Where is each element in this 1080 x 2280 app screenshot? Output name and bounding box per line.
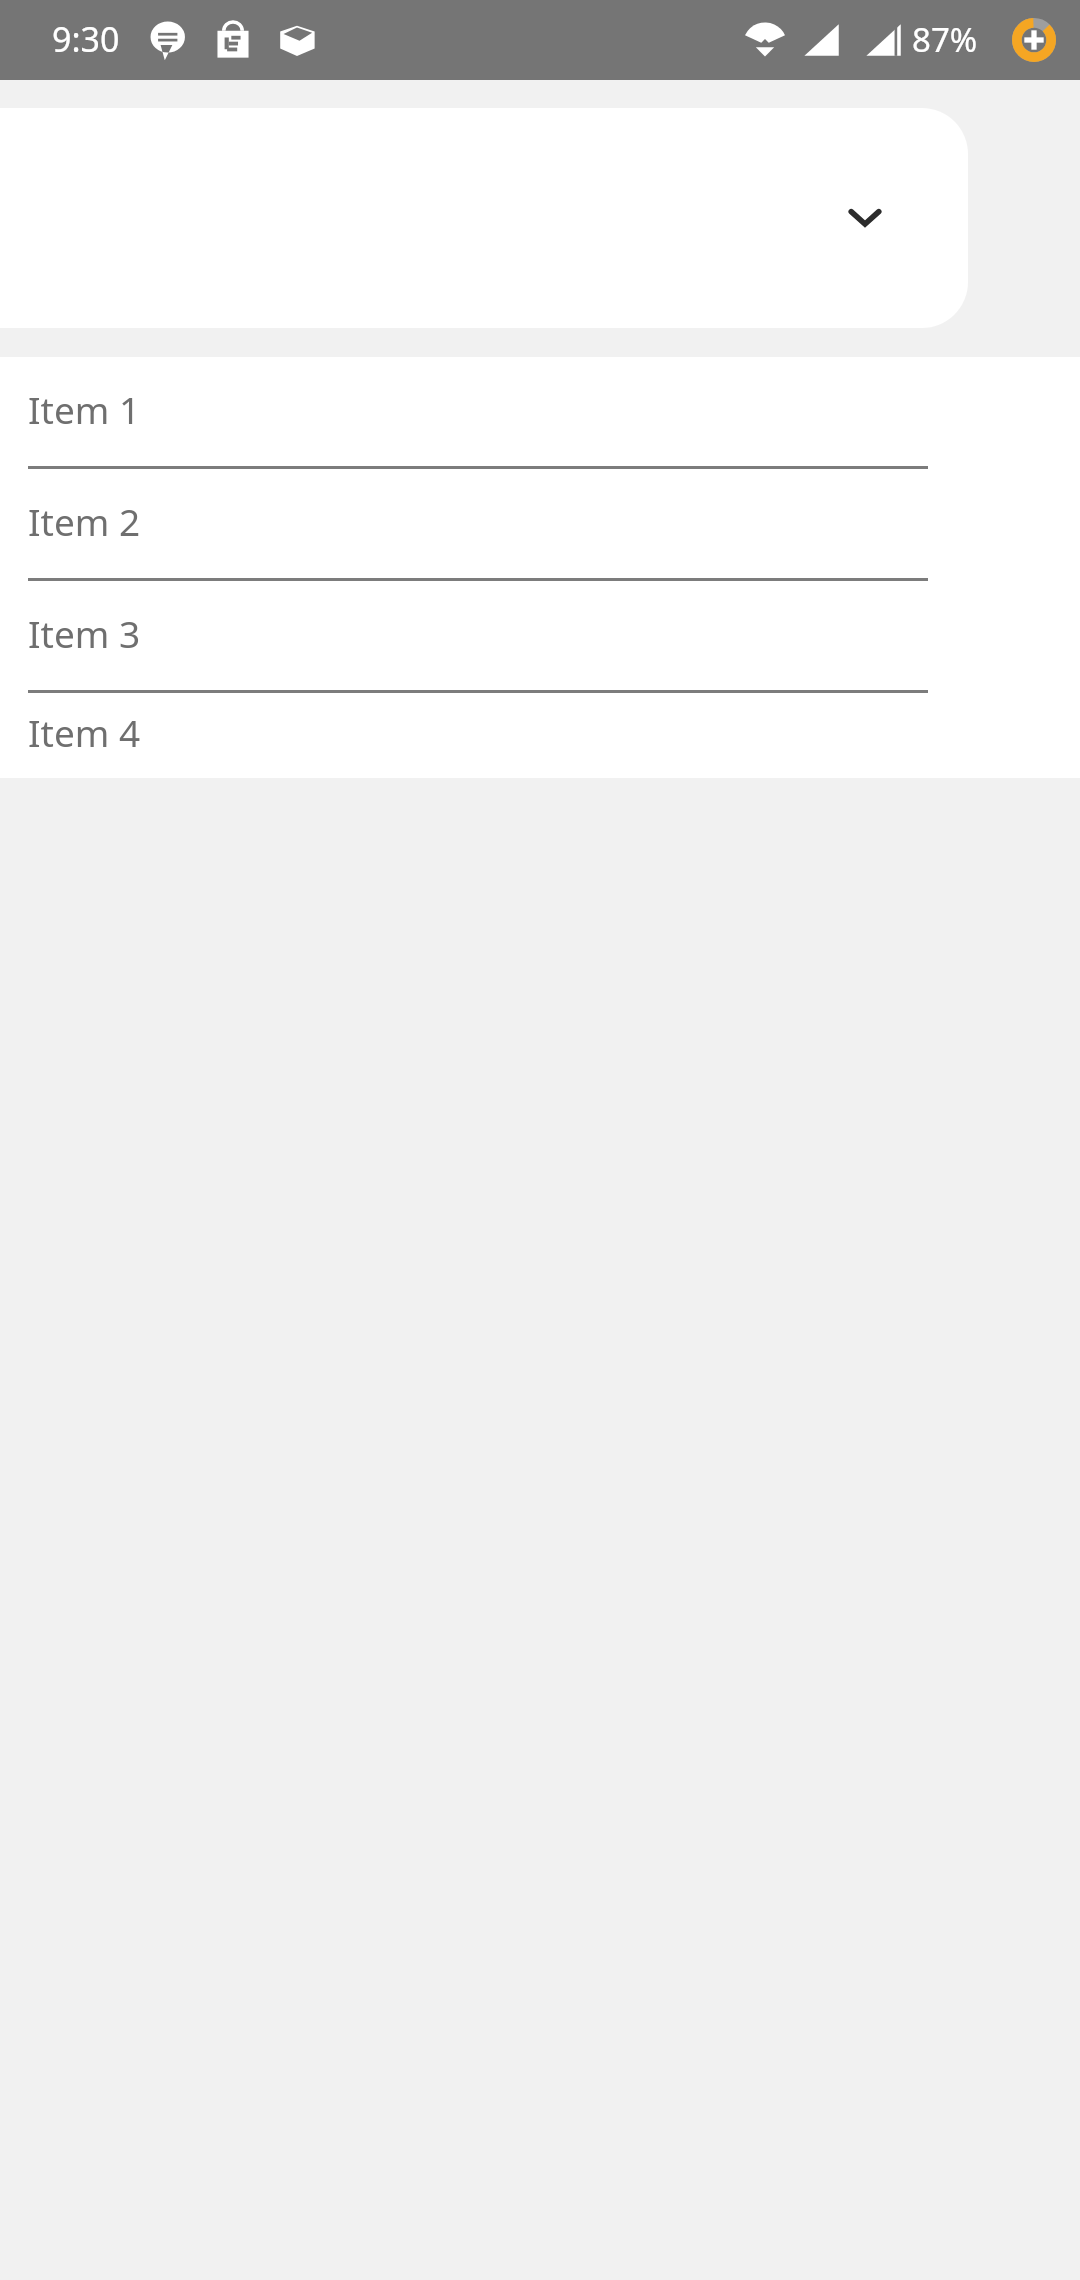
button[interactable]: Item 1 bbox=[0, 357, 1080, 469]
staticText: 9:30 bbox=[52, 16, 120, 62]
staticText: Item 3 bbox=[28, 608, 141, 658]
staticText: 87% bbox=[912, 17, 978, 62]
staticText: Item 2 bbox=[28, 496, 141, 546]
button[interactable]: Item 2 bbox=[0, 469, 1080, 581]
button[interactable]: Item 4 bbox=[0, 693, 1080, 778]
button[interactable]: Expand dropdown bbox=[0, 108, 968, 328]
button[interactable]: Item 3 bbox=[0, 581, 1080, 693]
other: Expand dropdown bbox=[842, 195, 888, 241]
other: Battery 87 percent charging bbox=[1012, 18, 1056, 62]
staticText: Item 1 bbox=[28, 384, 141, 434]
staticText: Item 4 bbox=[28, 707, 141, 757]
